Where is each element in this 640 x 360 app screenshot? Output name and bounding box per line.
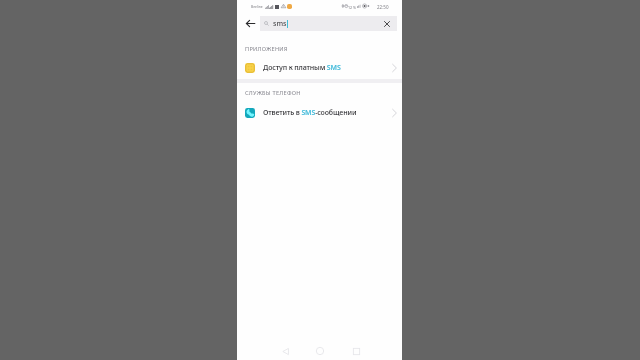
staticText: sms xyxy=(273,19,287,29)
button[interactable]: Back xyxy=(277,343,293,359)
button[interactable]: Back xyxy=(241,14,259,32)
staticText: СЛУЖБЫ ТЕЛЕФОН xyxy=(245,89,301,97)
staticText: Beeline xyxy=(251,4,263,9)
staticText: 22:50 xyxy=(377,4,389,10)
button[interactable]: Open xyxy=(387,106,401,120)
button[interactable]: Доступ к платным SMS xyxy=(237,57,402,78)
button[interactable]: Clear search xyxy=(378,16,395,31)
button[interactable]: Ответить в SMS-сообщении xyxy=(237,102,402,123)
staticText: 12 % xyxy=(348,5,357,10)
staticText: Доступ к платным SMS xyxy=(263,63,341,73)
staticText: ПРИЛОЖЕНИЯ xyxy=(245,45,288,53)
staticText: Ответить в SMS-сообщении xyxy=(263,108,357,118)
button[interactable]: Recent apps xyxy=(348,343,364,359)
button[interactable]: sms xyxy=(260,16,397,31)
button[interactable]: Home xyxy=(312,343,328,359)
button[interactable]: Open xyxy=(387,61,401,75)
